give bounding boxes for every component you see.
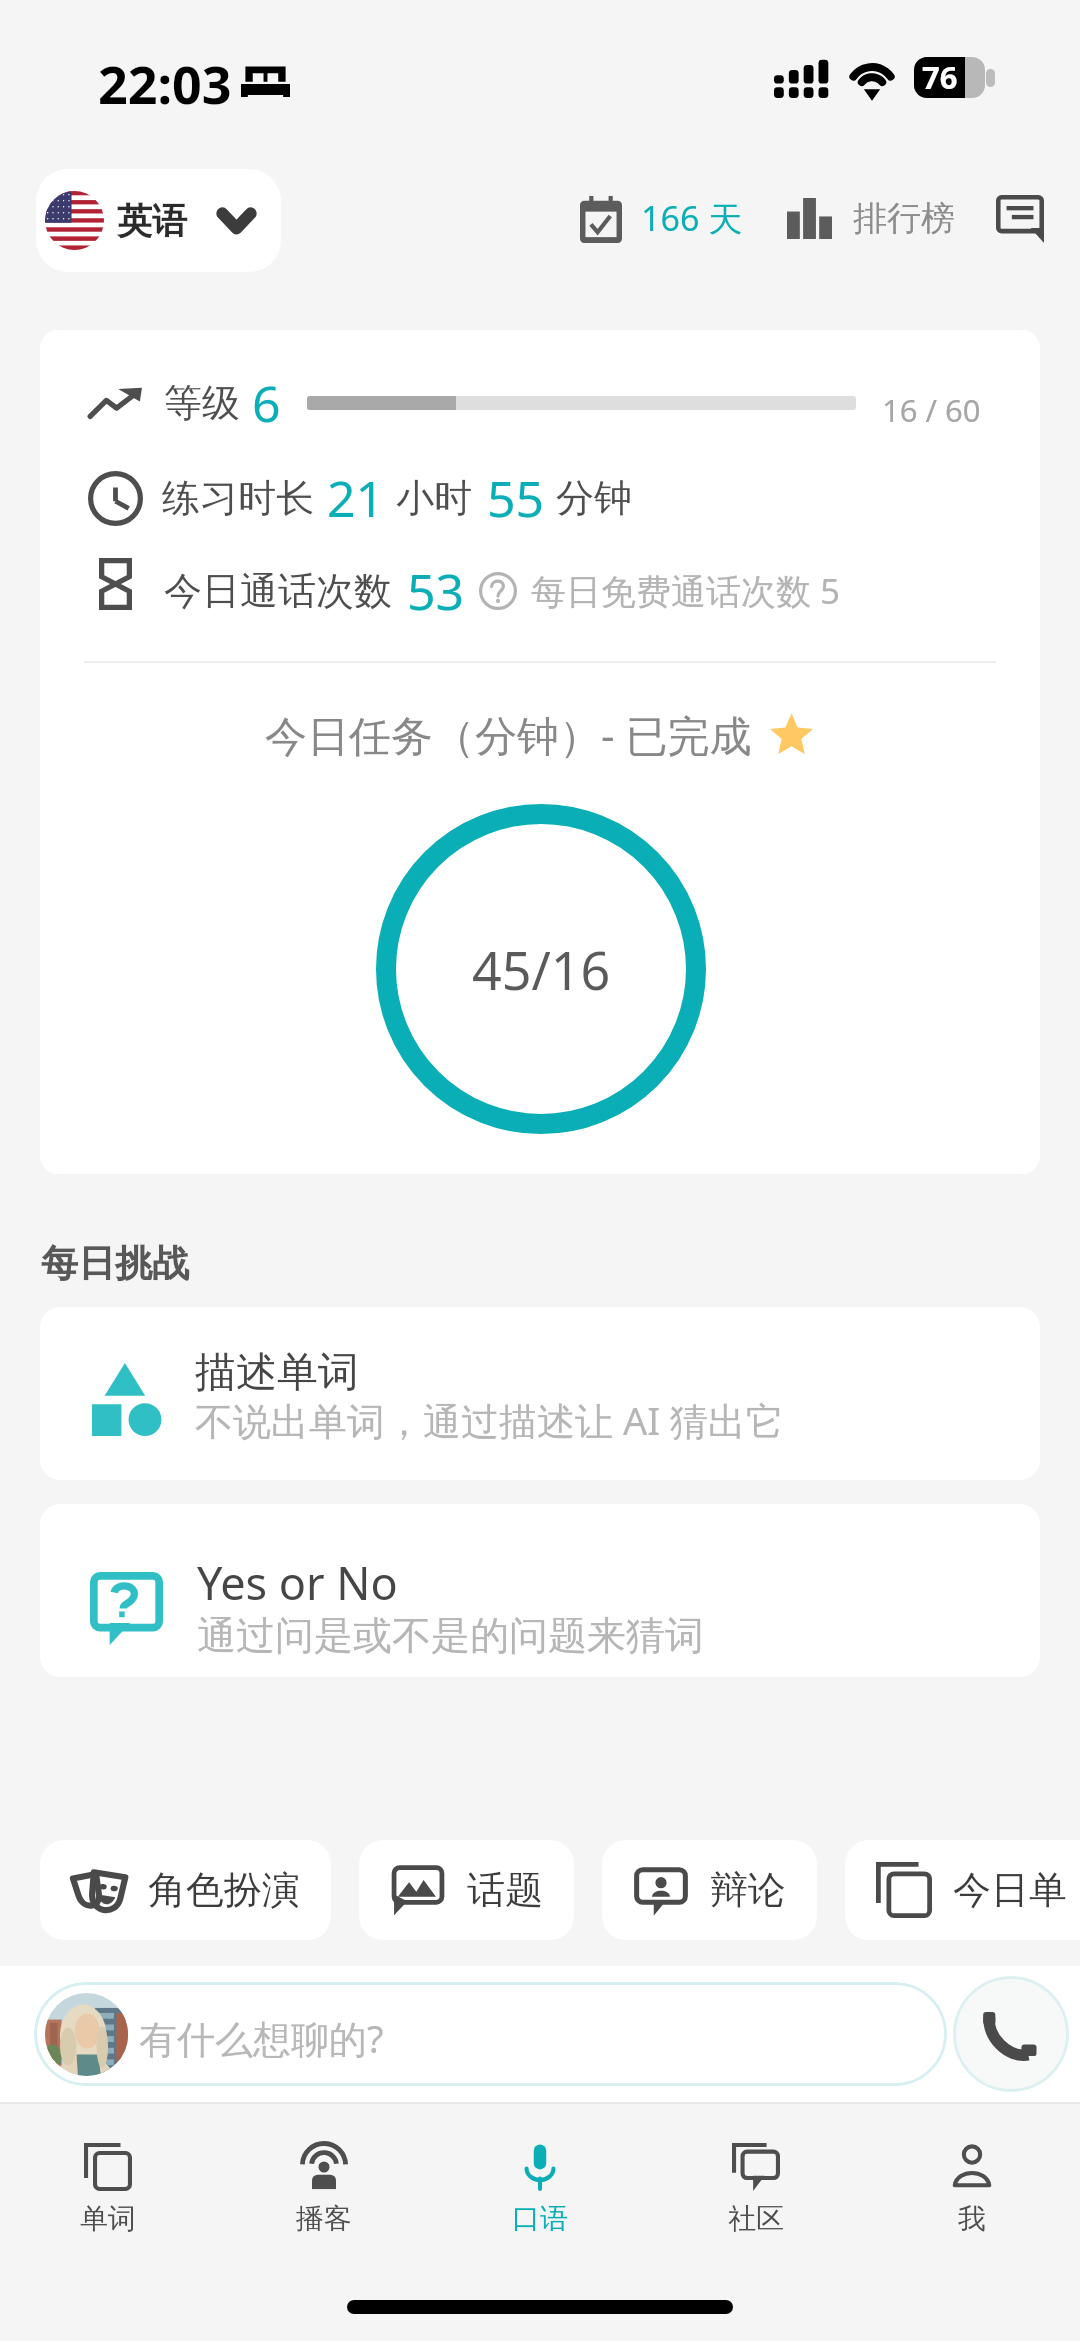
staticText: 不说出单词，通过描述让 AI 猜出它 xyxy=(195,1394,784,1446)
button[interactable]: 单词 xyxy=(0,2104,216,2274)
staticText: 16 / 60 xyxy=(882,389,981,431)
button[interactable]: 辩论 xyxy=(602,1840,817,1940)
staticText: 有什么想聊的? xyxy=(139,2012,384,2064)
staticText: 通过问是或不是的问题来猜词 xyxy=(197,1611,704,1660)
staticText: 角色扮演 xyxy=(148,1866,300,1914)
staticText: 今日通话次数 xyxy=(164,567,392,615)
staticText: 今日任务（分钟）- 已完成 xyxy=(265,706,752,762)
staticText: 描述单词 xyxy=(195,1347,359,1399)
staticText: 话题 xyxy=(467,1866,543,1914)
button[interactable]: 英语 xyxy=(36,169,281,272)
staticText: 22:03 xyxy=(98,48,232,119)
staticText: 小时 xyxy=(396,474,472,522)
staticText: 6 xyxy=(252,369,281,429)
button[interactable]: Call xyxy=(953,1976,1069,2092)
button[interactable]: 角色扮演 xyxy=(40,1840,331,1940)
staticText: 我 xyxy=(958,2201,986,2236)
staticText: 分钟 xyxy=(556,474,632,522)
staticText: 166 天 xyxy=(641,195,743,241)
button[interactable]: 描述单词 xyxy=(40,1307,1040,1480)
button[interactable]: 口语 xyxy=(432,2104,648,2274)
staticText: 45/16 xyxy=(472,934,611,1005)
button[interactable]: 有什么想聊的? xyxy=(34,1982,947,2086)
staticText: 排行榜 xyxy=(853,197,955,240)
button[interactable]: 今日单词 xyxy=(845,1840,1080,1940)
button[interactable]: Yes or No xyxy=(40,1504,1040,1677)
button[interactable]: 我 xyxy=(864,2104,1080,2274)
staticText: 英语 xyxy=(117,199,187,243)
button[interactable]: 166 天 xyxy=(570,178,753,258)
staticText: 53 xyxy=(407,557,465,617)
button[interactable]: 话题 xyxy=(359,1840,574,1940)
staticText: 等级 xyxy=(164,379,240,427)
staticText: 21 xyxy=(327,464,385,524)
staticText: 练习时长 xyxy=(162,474,314,522)
button[interactable]: Messages xyxy=(990,188,1050,248)
staticText: 每日免费通话次数 5 xyxy=(531,567,841,615)
staticText: 播客 xyxy=(296,2201,352,2236)
staticText: 每日挑战 xyxy=(41,1240,189,1287)
staticText: 单词 xyxy=(80,2201,136,2236)
staticText: 辩论 xyxy=(710,1866,786,1914)
button[interactable]: 排行榜 xyxy=(777,178,965,258)
staticText: 55 xyxy=(487,464,545,524)
staticText: 口语 xyxy=(512,2201,568,2236)
button[interactable]: 播客 xyxy=(216,2104,432,2274)
staticText: 社区 xyxy=(728,2201,784,2236)
staticText: 今日单词 xyxy=(953,1866,1080,1914)
staticText: Yes or No xyxy=(197,1552,398,1613)
button[interactable]: 社区 xyxy=(648,2104,864,2274)
staticText: 76 xyxy=(922,56,958,97)
